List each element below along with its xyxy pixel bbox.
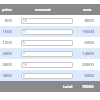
staticText: 11 <box>23 30 27 34</box>
staticText: 14000 <box>82 51 94 57</box>
staticText: amount <box>35 7 51 12</box>
staticText: 2000 <box>2 51 12 57</box>
staticText: 28000 <box>82 62 94 68</box>
staticText: 800 <box>4 18 12 24</box>
staticText: 6000 <box>84 73 94 79</box>
staticText: 1500 <box>2 29 12 35</box>
button[interactable]: 1500 <box>0 26 100 37</box>
staticText: 10 <box>23 19 27 23</box>
staticText: 7 <box>23 52 25 56</box>
button[interactable]: 2000 <box>0 48 100 59</box>
staticText: 8000 <box>84 18 94 24</box>
staticText: 3000 <box>2 73 12 79</box>
staticText: price <box>2 7 12 12</box>
button[interactable]: 3000 <box>0 70 100 81</box>
button[interactable]: 800 <box>0 15 100 26</box>
staticText: 10 <box>23 63 27 67</box>
button[interactable]: 1200 <box>0 37 100 48</box>
button[interactable]: 2800 <box>0 59 100 70</box>
staticText: 1200 <box>2 40 12 46</box>
staticText: 78500 <box>82 84 94 89</box>
staticText: sum <box>83 7 92 12</box>
staticText: 2 <box>23 74 25 78</box>
staticText: 16500 <box>82 29 94 35</box>
staticText: 5 <box>23 41 25 45</box>
staticText: 2800 <box>2 62 12 68</box>
staticText: 6000 <box>84 40 94 46</box>
staticText: total <box>63 84 73 89</box>
